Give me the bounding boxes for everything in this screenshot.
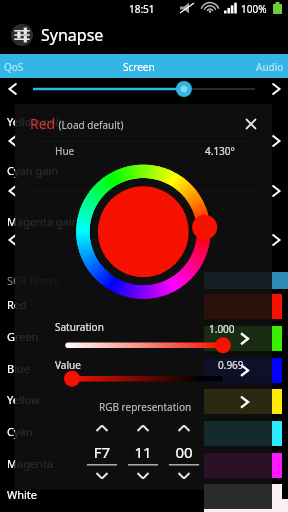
staticText: Green xyxy=(7,329,39,344)
staticText: Blue xyxy=(7,361,30,376)
staticText: Yellow xyxy=(7,392,40,407)
staticText: Audio xyxy=(256,60,284,74)
staticText: Saturation xyxy=(55,320,104,334)
staticText: Cyan xyxy=(7,424,33,439)
staticText: Red xyxy=(30,114,56,133)
staticText: 18:51 xyxy=(129,2,155,16)
staticText: SCR filters xyxy=(7,273,60,288)
staticText: Magenta gain xyxy=(7,214,79,229)
staticText: 100% xyxy=(241,2,267,16)
button[interactable]: F7 xyxy=(82,420,122,482)
staticText: F7 xyxy=(82,442,122,462)
staticText: Magenta xyxy=(7,456,54,471)
staticText: 4.130° xyxy=(205,144,235,158)
staticText: Cyan gain xyxy=(7,163,58,178)
staticText: 0.969 xyxy=(218,358,244,372)
staticText: Synapse xyxy=(41,24,104,46)
button[interactable]: 11 xyxy=(123,420,163,482)
staticText: Yellow gain xyxy=(7,114,66,129)
staticText: Red xyxy=(7,297,27,312)
staticText: Value xyxy=(55,358,81,372)
staticText: Hue xyxy=(55,144,75,158)
staticText: 1.000 xyxy=(209,322,235,336)
staticText: White xyxy=(7,487,38,502)
staticText: QoS xyxy=(4,60,24,74)
button[interactable]: Close xyxy=(241,114,261,134)
staticText: Screen xyxy=(123,60,155,74)
staticText: RGB representation xyxy=(99,400,192,414)
staticText: 11 xyxy=(123,442,163,462)
staticText: 00 xyxy=(164,442,204,462)
button[interactable]: 00 xyxy=(164,420,204,482)
staticText: (Load default) xyxy=(56,118,124,132)
